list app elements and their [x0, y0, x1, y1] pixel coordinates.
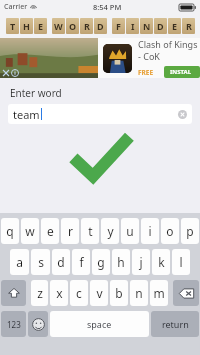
staticText: T [10, 20, 16, 32]
staticText: j [139, 254, 143, 270]
staticText: e [47, 223, 54, 239]
button[interactable]: r [61, 218, 79, 244]
staticText: b [115, 285, 123, 301]
staticText: f [79, 254, 84, 270]
staticText: v [96, 285, 103, 301]
button[interactable]: z [31, 280, 48, 306]
staticText: Enter word [10, 86, 62, 100]
staticText: x [56, 285, 63, 301]
staticText: R [84, 20, 90, 32]
staticText: O [69, 20, 77, 32]
staticText: return [162, 318, 189, 330]
button[interactable]: j [132, 249, 150, 275]
staticText: u [126, 223, 134, 239]
button[interactable]: g [92, 249, 110, 275]
staticText: d [57, 254, 65, 270]
button[interactable]: o [161, 218, 179, 244]
button[interactable]: Close ad [0, 38, 200, 78]
staticText: 8:54 PM [93, 2, 122, 12]
button[interactable]: Backspace [173, 280, 199, 306]
button[interactable]: x [50, 280, 68, 306]
staticText: n [135, 285, 143, 301]
staticText: H [23, 20, 30, 32]
staticText: t [88, 223, 93, 239]
staticText: W [54, 20, 63, 32]
button[interactable]: Ad information [10, 68, 19, 77]
staticText: E [38, 20, 44, 32]
staticText: q [6, 223, 14, 239]
staticText: s [38, 254, 44, 270]
button[interactable]: n [130, 280, 148, 306]
button[interactable]: h [112, 249, 130, 275]
button[interactable]: y [101, 218, 119, 244]
button[interactable]: l [172, 249, 190, 275]
staticText: Carrier [4, 2, 28, 12]
staticText: Clash of Kings - CoK [138, 38, 200, 62]
button[interactable]: b [110, 280, 128, 306]
staticText: r [68, 223, 73, 239]
staticText: i [148, 223, 152, 239]
button[interactable]: q [1, 218, 19, 244]
button[interactable]: c [70, 280, 88, 306]
staticText: N [143, 20, 151, 32]
staticText: I [131, 20, 135, 32]
button[interactable]: p [181, 218, 199, 244]
button[interactable]: f [72, 249, 90, 275]
button[interactable]: space [50, 311, 149, 337]
staticText: D [97, 20, 104, 32]
button[interactable]: a [10, 249, 29, 275]
staticText: y [107, 223, 114, 239]
button[interactable]: m [150, 280, 168, 306]
button[interactable]: Clear text [177, 109, 187, 119]
button[interactable]: u [121, 218, 139, 244]
staticText: space [87, 318, 112, 330]
staticText: h [117, 254, 125, 270]
staticText: team [13, 107, 40, 122]
button[interactable]: t [81, 218, 99, 244]
staticText: R [186, 20, 192, 32]
staticText: g [97, 254, 105, 270]
staticText: p [186, 223, 194, 239]
button[interactable]: s [31, 249, 50, 275]
button[interactable]: return [151, 311, 199, 337]
button[interactable]: Shift [1, 280, 26, 306]
button[interactable]: Emoji [28, 311, 48, 337]
staticText: o [166, 223, 174, 239]
staticText: z [37, 285, 43, 301]
staticText: a [16, 254, 23, 270]
staticText: D [157, 20, 164, 32]
button[interactable]: team [8, 104, 192, 124]
button[interactable]: w [21, 218, 39, 244]
staticText: 123 [7, 319, 21, 330]
staticText: l [179, 254, 183, 270]
button[interactable]: d [52, 249, 70, 275]
staticText: FREE [138, 68, 154, 77]
button[interactable]: Close ad [1, 68, 10, 77]
button[interactable]: 123 [1, 311, 26, 337]
staticText: E [172, 20, 178, 32]
staticText: c [76, 285, 82, 301]
button[interactable]: e [41, 218, 59, 244]
staticText: m [153, 285, 165, 301]
staticText: INSTALL [170, 68, 194, 76]
staticText: k [158, 254, 165, 270]
staticText: F [116, 20, 121, 32]
staticText: w [25, 223, 35, 239]
button[interactable]: k [152, 249, 170, 275]
button[interactable]: v [90, 280, 108, 306]
button[interactable]: INSTALL [164, 66, 200, 78]
button[interactable]: i [141, 218, 159, 244]
